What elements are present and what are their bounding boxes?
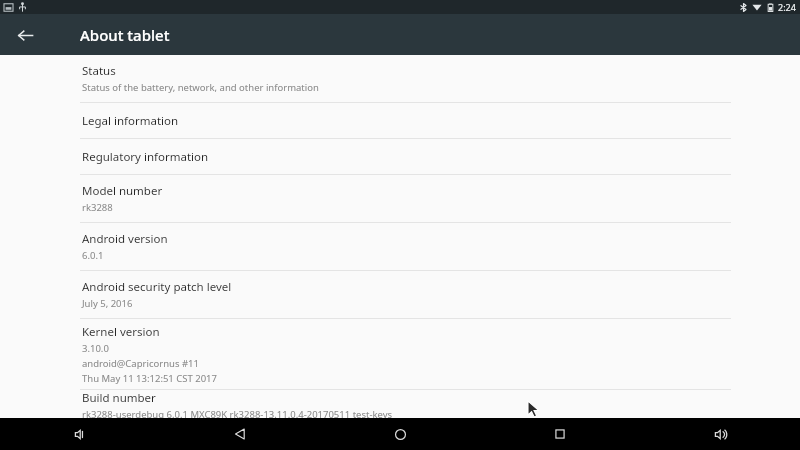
staticText: rk3288	[82, 201, 113, 214]
button[interactable]: Kernel version	[0, 319, 800, 389]
button[interactable]: Volume down	[0, 418, 160, 450]
button[interactable]: Back	[8, 18, 42, 52]
button[interactable]: Status	[0, 55, 800, 102]
button[interactable]: Legal information	[0, 103, 800, 138]
button[interactable]: Recent apps	[480, 418, 640, 450]
staticText: 3.10.0	[82, 342, 109, 355]
button[interactable]: Model number	[0, 175, 800, 222]
button[interactable]: Volume up	[640, 418, 800, 450]
staticText: android@Capricornus #11	[82, 357, 199, 370]
button[interactable]: Back	[160, 418, 320, 450]
button[interactable]: Android security patch level	[0, 271, 800, 318]
staticText: Regulatory information	[82, 149, 209, 165]
button[interactable]: Home	[320, 418, 480, 450]
staticText: Build number	[82, 390, 156, 406]
staticText: Status of the battery, network, and othe…	[82, 81, 319, 94]
staticText: Kernel version	[82, 324, 160, 340]
button[interactable]: Android version	[0, 223, 800, 270]
staticText: Android security patch level	[82, 279, 232, 295]
staticText: July 5, 2016	[82, 297, 133, 310]
staticText: 2:24	[778, 1, 796, 13]
staticText: Android version	[82, 231, 168, 247]
staticText: 6.0.1	[82, 249, 104, 262]
button[interactable]: Regulatory information	[0, 139, 800, 174]
staticText: Status	[82, 63, 116, 79]
staticText: About tablet	[80, 25, 170, 45]
staticText: Model number	[82, 183, 163, 199]
staticText: Thu May 11 13:12:51 CST 2017	[82, 372, 217, 385]
staticText: Legal information	[82, 113, 179, 129]
button[interactable]: Build number	[0, 390, 800, 418]
staticText: rk3288-userdebug 6.0.1 MXC89K rk3288-13.…	[82, 408, 393, 418]
